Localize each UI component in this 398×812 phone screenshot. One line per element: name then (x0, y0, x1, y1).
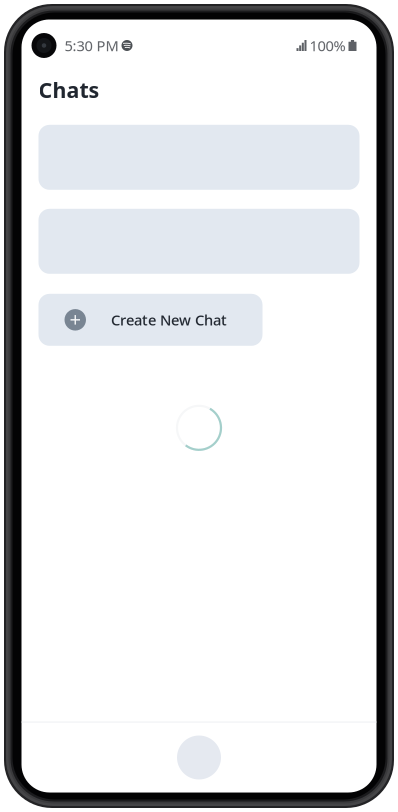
button[interactable]: Home (163, 722, 235, 792)
staticText: 5:30 PM (64, 36, 118, 55)
staticText: 100% (309, 36, 345, 55)
button[interactable]: Create New Chat (38, 294, 262, 346)
staticText: Chats (38, 75, 99, 104)
staticText: Create New Chat (111, 310, 227, 330)
